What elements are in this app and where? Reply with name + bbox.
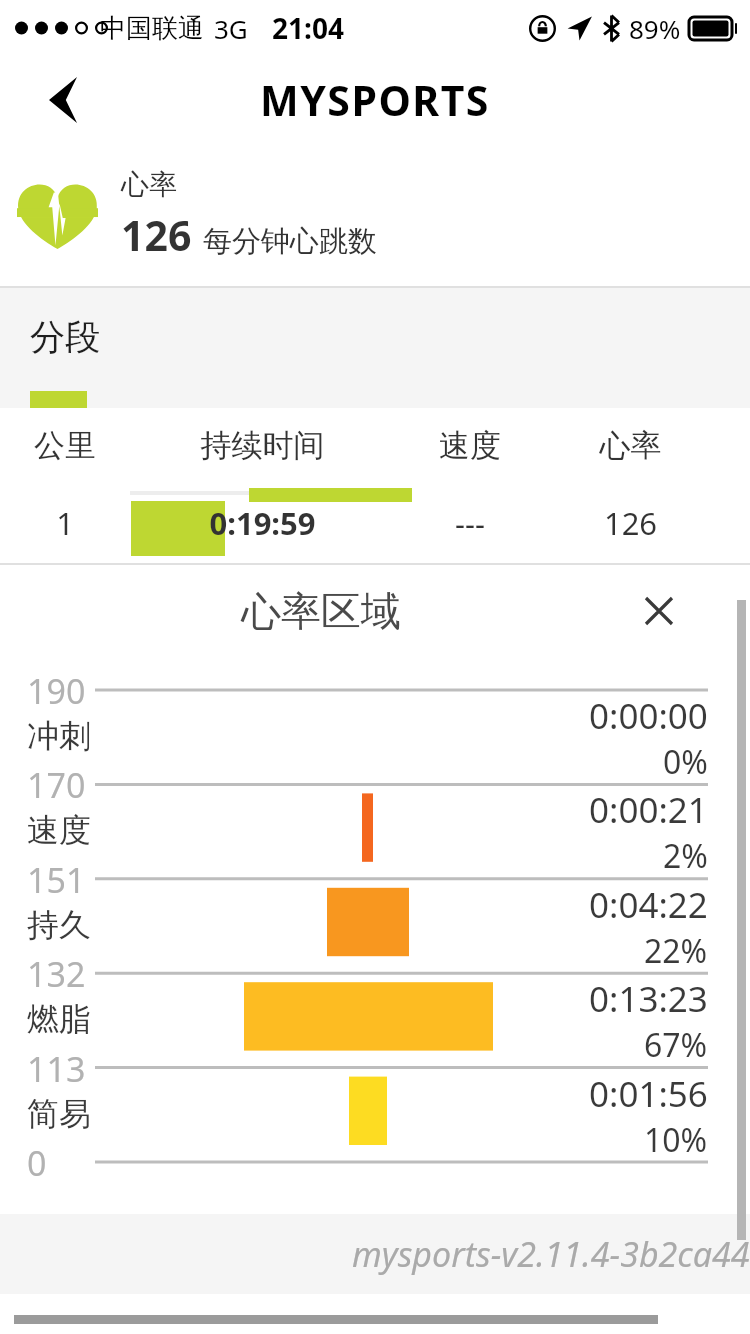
staticText: 67%: [644, 1023, 708, 1067]
staticText: 简易: [27, 1094, 91, 1134]
staticText: 0:00:21: [589, 786, 708, 834]
button[interactable]: Close: [634, 586, 684, 636]
staticText: 0:00:00: [589, 692, 708, 740]
staticText: 126: [121, 207, 192, 263]
staticText: 113: [27, 1046, 86, 1092]
staticText: 每分钟心跳数: [203, 223, 377, 260]
staticText: 燃脂: [27, 999, 91, 1039]
staticText: 22%: [644, 929, 708, 973]
staticText: 2%: [663, 834, 708, 878]
staticText: 0%: [663, 740, 708, 784]
staticText: 中国联通: [100, 12, 204, 45]
button[interactable]: 1: [0, 483, 750, 563]
staticText: mysports-v2.11.4-3b2ca44: [352, 1231, 750, 1277]
staticText: 持续时间: [130, 426, 395, 465]
staticText: 分段: [30, 315, 100, 359]
staticText: 170: [27, 762, 86, 808]
staticText: 公里: [0, 426, 130, 465]
button[interactable]: 分段: [0, 288, 117, 408]
staticText: 89%: [629, 11, 681, 46]
staticText: 190: [27, 668, 86, 714]
staticText: 心率: [545, 426, 716, 465]
staticText: 0:04:22: [589, 881, 708, 929]
staticText: 速度: [395, 426, 545, 465]
staticText: ---: [395, 502, 545, 544]
staticText: 心率区域: [241, 586, 401, 636]
staticText: 0:19:59: [130, 502, 395, 544]
staticText: 10%: [644, 1118, 708, 1162]
staticText: 速度: [27, 810, 91, 850]
staticText: MYSPORTS: [260, 72, 490, 128]
staticText: 1: [0, 502, 130, 544]
button[interactable]: 心率: [0, 144, 750, 286]
staticText: 0: [27, 1140, 47, 1186]
staticText: 151: [27, 857, 86, 903]
staticText: 心率: [121, 167, 177, 202]
staticText: 持久: [27, 905, 91, 945]
staticText: 21:04: [272, 9, 344, 47]
staticText: 126: [545, 502, 716, 544]
staticText: 132: [27, 951, 86, 997]
staticText: 冲刺: [27, 716, 91, 756]
staticText: 3G: [214, 11, 248, 46]
staticText: 0:01:56: [589, 1070, 708, 1118]
staticText: 0:13:23: [589, 975, 708, 1023]
button[interactable]: Back: [30, 67, 96, 133]
